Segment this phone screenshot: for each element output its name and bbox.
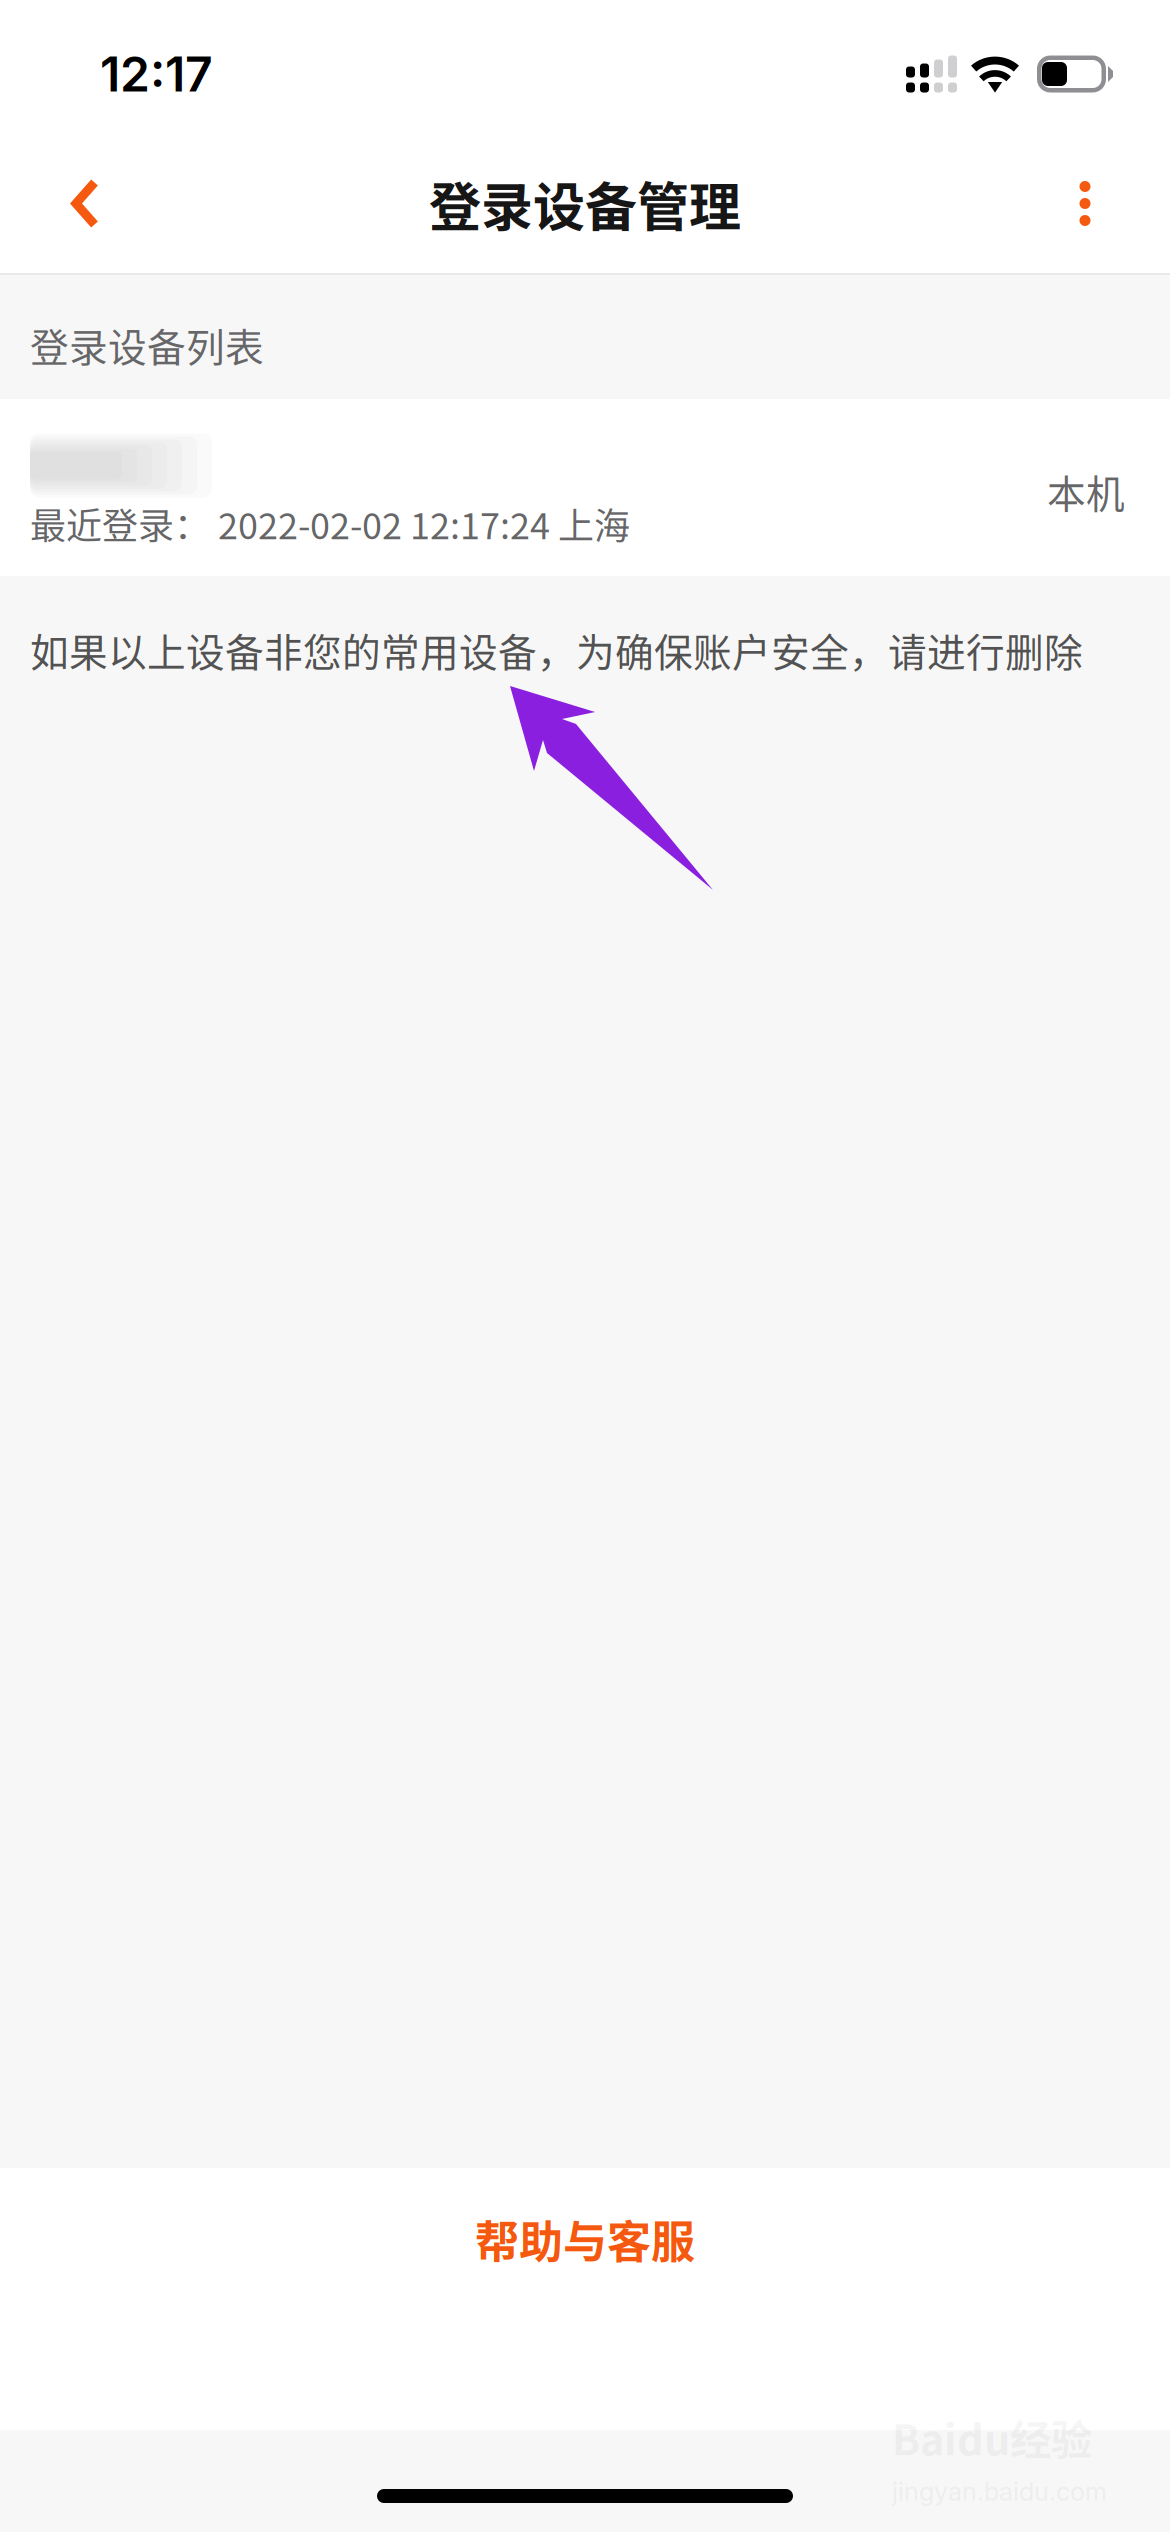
staticText: 12:17	[100, 45, 213, 103]
button[interactable]: 最近登录： 2022-02-02 12:17:24 上海	[0, 399, 1170, 576]
staticText: jingyan.baidu.com	[892, 2476, 1107, 2507]
button[interactable]: 更多选项	[1037, 148, 1133, 258]
staticText: 如果以上设备非您的常用设备，为确保账户安全，请进行删除	[30, 622, 1083, 678]
staticText: 本机	[1047, 463, 1125, 519]
staticText: 最近登录： 2022-02-02 12:17:24 上海	[30, 497, 630, 549]
button[interactable]: 返回	[37, 148, 133, 258]
staticText: 帮助与客服	[475, 2207, 695, 2271]
staticText: Baidu经验	[892, 2407, 1092, 2467]
staticText: 登录设备管理	[429, 166, 741, 241]
button[interactable]: 帮助与客服	[0, 2168, 1170, 2310]
staticText: 登录设备列表	[30, 317, 264, 373]
